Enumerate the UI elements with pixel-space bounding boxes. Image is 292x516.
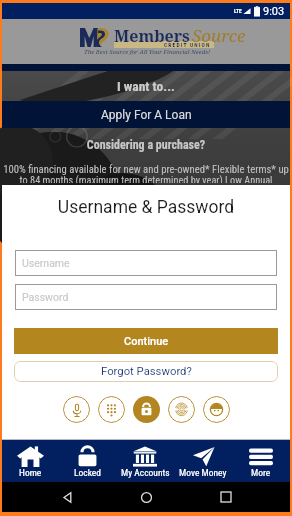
staticText: My Accounts: [121, 467, 170, 478]
staticText: Username: [22, 257, 70, 269]
button[interactable]: Move Money: [174, 440, 232, 482]
staticText: I want to...: [117, 78, 175, 94]
staticText: Password: [22, 291, 69, 303]
staticText: Forgot Password?: [101, 365, 192, 378]
button[interactable]: Username: [15, 250, 277, 276]
button[interactable]: More: [232, 440, 290, 482]
staticText: Username & Password: [2, 197, 290, 218]
button[interactable]: Continue: [14, 328, 278, 354]
staticText: Apply For A Loan: [101, 108, 192, 122]
button[interactable]: Home: [131, 482, 161, 512]
staticText: 100% financing available for new and pre…: [2, 163, 290, 176]
staticText: CREDIT UNION: [164, 42, 211, 48]
staticText: 9:03: [263, 5, 285, 18]
button[interactable]: PIN keypad: [98, 396, 125, 423]
button[interactable]: Face login: [203, 396, 230, 423]
button[interactable]: Password: [15, 284, 277, 310]
staticText: LTE: [234, 8, 242, 14]
staticText: Move Money: [179, 467, 227, 478]
staticText: Locked: [74, 467, 102, 478]
staticText: to 84 months (maximum term determined by…: [2, 174, 290, 183]
button[interactable]: Home: [2, 440, 59, 482]
staticText: Considering a purchase?: [2, 138, 290, 152]
staticText: Continue: [124, 335, 169, 348]
button[interactable]: Password login: [133, 396, 160, 423]
button[interactable]: Forgot Password?: [14, 361, 278, 382]
staticText: The Best Source for All Your Financial N…: [80, 48, 214, 56]
staticText: Members: [114, 25, 190, 47]
button[interactable]: Recent apps: [211, 482, 241, 512]
staticText: Source: [192, 24, 246, 47]
button[interactable]: My Accounts: [116, 440, 174, 482]
button[interactable]: Back: [52, 482, 82, 512]
button[interactable]: I want to...: [2, 71, 290, 101]
button[interactable]: Apply For A Loan: [2, 101, 290, 128]
staticText: More: [251, 467, 271, 478]
button[interactable]: Voice login: [63, 396, 90, 423]
button[interactable]: Locked: [59, 440, 116, 482]
staticText: Home: [19, 467, 42, 478]
button[interactable]: Fingerprint login: [168, 396, 195, 423]
